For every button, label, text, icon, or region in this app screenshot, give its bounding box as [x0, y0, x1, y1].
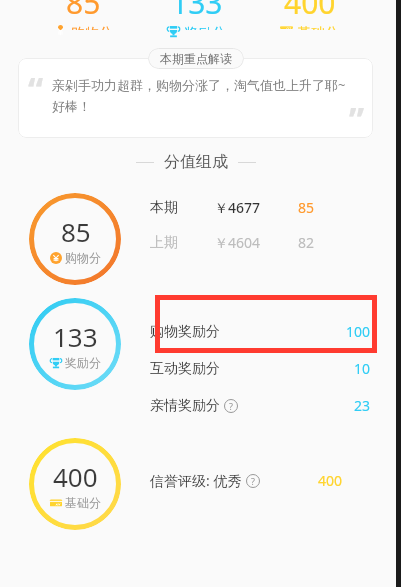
staticText: 133 [53, 319, 98, 354]
button[interactable]: 上期 [150, 233, 401, 252]
staticText: ? [251, 475, 255, 487]
staticText: 82 [298, 233, 315, 252]
button[interactable]: 帮助 [246, 474, 260, 488]
staticText: ? [229, 400, 233, 412]
staticText: 400 [318, 471, 343, 490]
button[interactable]: 本期 [150, 198, 401, 217]
staticText: 23 [354, 396, 371, 415]
button[interactable]: 133 [29, 298, 121, 390]
button[interactable]: 85 [29, 193, 121, 285]
staticText: 亲情奖励分 [150, 397, 220, 415]
staticText: 分值组成 [164, 152, 228, 172]
staticText: 10 [354, 359, 371, 378]
staticText: 上期 [150, 234, 214, 252]
button[interactable]: “ [18, 58, 373, 138]
staticText: 互动奖励分 [150, 360, 220, 378]
staticText: 奖励分 [65, 355, 101, 370]
staticText: 奖励分 [184, 25, 226, 30]
staticText: 购物奖励分 [150, 323, 220, 341]
staticText: 400 [53, 459, 98, 494]
staticText: 亲剁手功力超群，购物分涨了，淘气值也上升了耶~ 好棒！ [52, 76, 346, 115]
staticText: 购物分 [65, 250, 101, 265]
staticText: 基础分 [65, 495, 101, 510]
button[interactable]: 本期重点解读 [160, 51, 232, 66]
staticText: 基础分 [297, 25, 339, 30]
staticText: 购物分 [71, 25, 113, 30]
button[interactable]: 400 [29, 438, 121, 530]
button[interactable]: 133 [167, 0, 226, 30]
button[interactable]: 85 [54, 0, 113, 30]
staticText: 85 [298, 198, 315, 217]
button[interactable]: 购物奖励分 [150, 322, 371, 341]
button[interactable]: 亲情奖励分 [150, 396, 371, 415]
staticText: 85 [66, 0, 101, 23]
button[interactable]: 400 [280, 0, 339, 30]
staticText: 本期 [150, 199, 214, 217]
staticText: 100 [346, 322, 371, 341]
button[interactable]: 互动奖励分 [150, 359, 371, 378]
staticText: ” [349, 96, 365, 138]
button[interactable]: 帮助 [224, 399, 238, 413]
staticText: 400 [284, 0, 336, 23]
staticText: 信誉评级: 优秀 [150, 471, 242, 490]
staticText: “ [28, 66, 44, 112]
staticText: ￥4677 [214, 198, 298, 217]
staticText: ￥4604 [214, 233, 298, 252]
staticText: 85 [61, 214, 91, 249]
staticText: 133 [171, 0, 223, 23]
staticText: 本期重点解读 [160, 51, 232, 66]
